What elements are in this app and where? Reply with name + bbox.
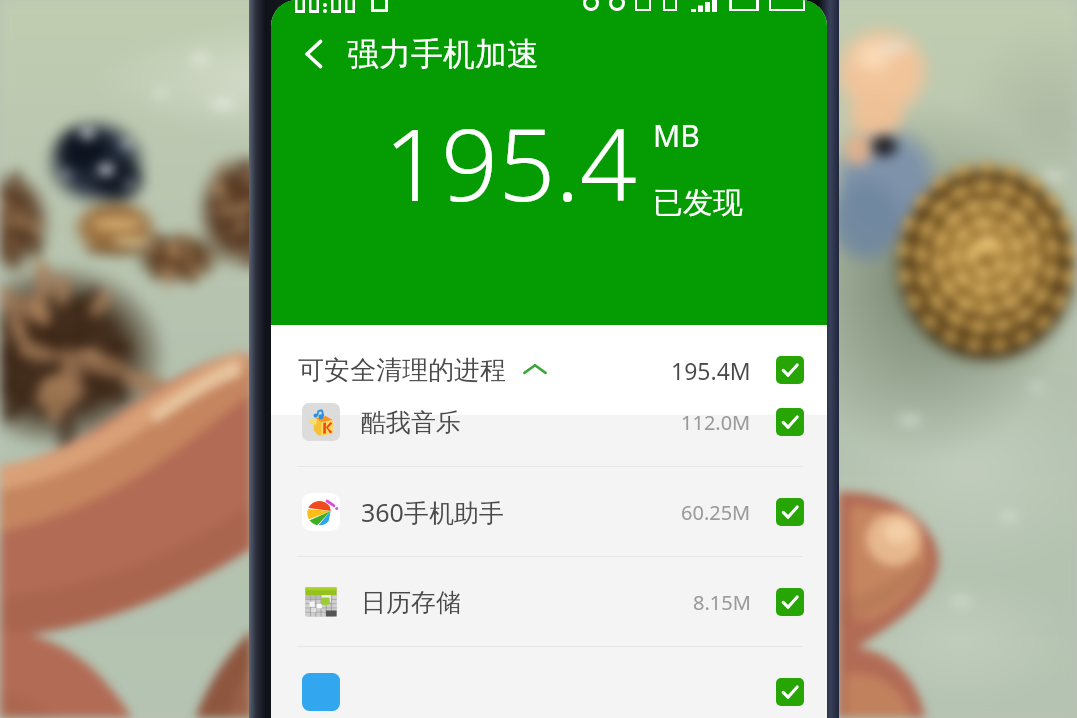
staticText: 8.15M xyxy=(693,589,751,616)
button[interactable]: Selected xyxy=(271,647,827,718)
button[interactable]: Selected xyxy=(776,408,804,436)
button[interactable]: 360手机助手 xyxy=(271,467,827,557)
staticText: MB xyxy=(653,115,700,156)
button[interactable]: Back xyxy=(291,31,337,77)
button[interactable]: 日历存储 xyxy=(271,557,827,647)
button[interactable]: Selected xyxy=(776,678,804,706)
staticText: 日历存储 xyxy=(361,587,461,618)
button[interactable]: Selected xyxy=(776,356,804,384)
staticText: 60.25M xyxy=(681,499,751,526)
button[interactable]: Selected xyxy=(776,588,804,616)
button[interactable]: Selected xyxy=(776,498,804,526)
staticText: 已发现 xyxy=(653,184,743,222)
staticText: 112.0M xyxy=(681,409,751,436)
staticText: 强力手机加速 xyxy=(347,34,539,74)
staticText: 酷我音乐 xyxy=(361,407,461,438)
staticText: 可安全清理的进程 xyxy=(298,354,506,387)
staticText: 195.4M xyxy=(671,355,751,386)
staticText: 195.4 xyxy=(384,94,637,230)
button[interactable]: 酷我音乐 xyxy=(271,377,827,467)
button[interactable]: 可安全清理的进程 xyxy=(271,325,827,415)
staticText: 360手机助手 xyxy=(361,495,504,529)
